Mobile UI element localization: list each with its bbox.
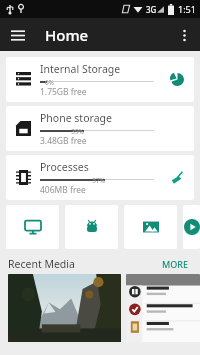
staticText: 1.75GB free [40,86,87,98]
button[interactable]: Quiz app screenshot [126,274,200,342]
button[interactable]: Images [124,205,177,249]
staticText: Internal Storage [40,62,121,76]
button[interactable]: Apps [65,205,118,249]
staticText: Processes [40,160,89,174]
staticText: 6% [40,78,54,85]
staticText: 3.48GB free [40,135,87,147]
button[interactable]: Processes [6,155,194,200]
staticText: 39% [40,127,84,134]
button[interactable]: Internal Storage [6,57,194,102]
staticText: 3G [146,4,157,15]
staticText: 406MB free [40,184,86,196]
staticText: Home [45,25,89,45]
staticText: 57% [40,176,105,183]
staticText: Phone storage [40,111,112,125]
button[interactable]: Cast to screen [6,205,59,249]
button[interactable]: Videos [183,205,200,249]
button[interactable]: Phone storage [6,106,194,151]
button[interactable]: Open navigation menu [6,23,30,47]
staticText: MORE [162,258,189,270]
staticText: Recent Media [8,257,75,271]
button[interactable]: More options [172,23,196,47]
button[interactable]: MORE [159,256,192,272]
staticText: 1:51 [178,3,196,15]
button[interactable]: Mountain photo [8,274,121,342]
